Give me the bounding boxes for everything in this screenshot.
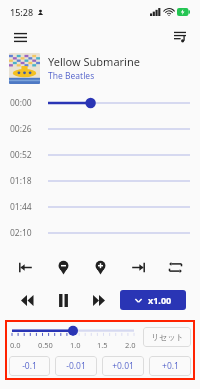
staticText: リセット [151, 332, 184, 342]
button[interactable]: リセット [143, 327, 191, 347]
staticText: 02:10 [10, 227, 32, 239]
button[interactable]: 00:52 [0, 142, 200, 168]
staticText: +0.1 [162, 360, 179, 372]
button[interactable]: Add marker [87, 254, 113, 280]
staticText: 0.50 [38, 340, 53, 350]
button[interactable]: Fast forward [85, 287, 111, 313]
staticText: 2.0 [125, 340, 136, 350]
staticText: The Beatles [48, 70, 95, 82]
staticText: -0.1 [22, 360, 37, 372]
button[interactable]: 00:26 [0, 116, 200, 142]
staticText: 1.0 [70, 340, 81, 350]
staticText: 15:28 [10, 6, 34, 18]
button[interactable]: 00:00 [0, 90, 200, 116]
staticText: 01:44 [10, 201, 32, 213]
button[interactable]: Skip to start [12, 254, 38, 280]
button[interactable]: Loop [162, 254, 188, 280]
staticText: -0.01 [66, 360, 86, 372]
button[interactable]: Pause [50, 287, 76, 313]
staticText: 00:26 [10, 123, 32, 135]
staticText: 00:00 [10, 97, 32, 109]
staticText: +0.01 [112, 360, 134, 372]
button[interactable]: x1.00 [120, 290, 186, 310]
button[interactable]: Remove marker [50, 254, 76, 280]
staticText: 1.5 [97, 340, 108, 350]
button[interactable]: 01:44 [0, 194, 200, 220]
button[interactable]: +0.01 [102, 356, 144, 376]
staticText: 0.0 [10, 340, 21, 350]
button[interactable]: Skip to end [125, 254, 151, 280]
staticText: Yellow Submarine [48, 54, 140, 69]
staticText: x1.00 [148, 294, 172, 306]
button[interactable]: -0.01 [55, 356, 97, 376]
button[interactable]: Rewind [14, 287, 40, 313]
button[interactable]: 02:10 [0, 220, 200, 246]
button[interactable]: 01:18 [0, 168, 200, 194]
staticText: 01:18 [10, 175, 32, 187]
button[interactable]: -0.1 [9, 356, 50, 376]
button[interactable]: +0.1 [149, 356, 191, 376]
button[interactable]: Playlist [170, 27, 190, 47]
staticText: 00:52 [10, 149, 32, 161]
button[interactable]: 0.0 [9, 324, 137, 350]
button[interactable]: Menu [10, 27, 30, 47]
